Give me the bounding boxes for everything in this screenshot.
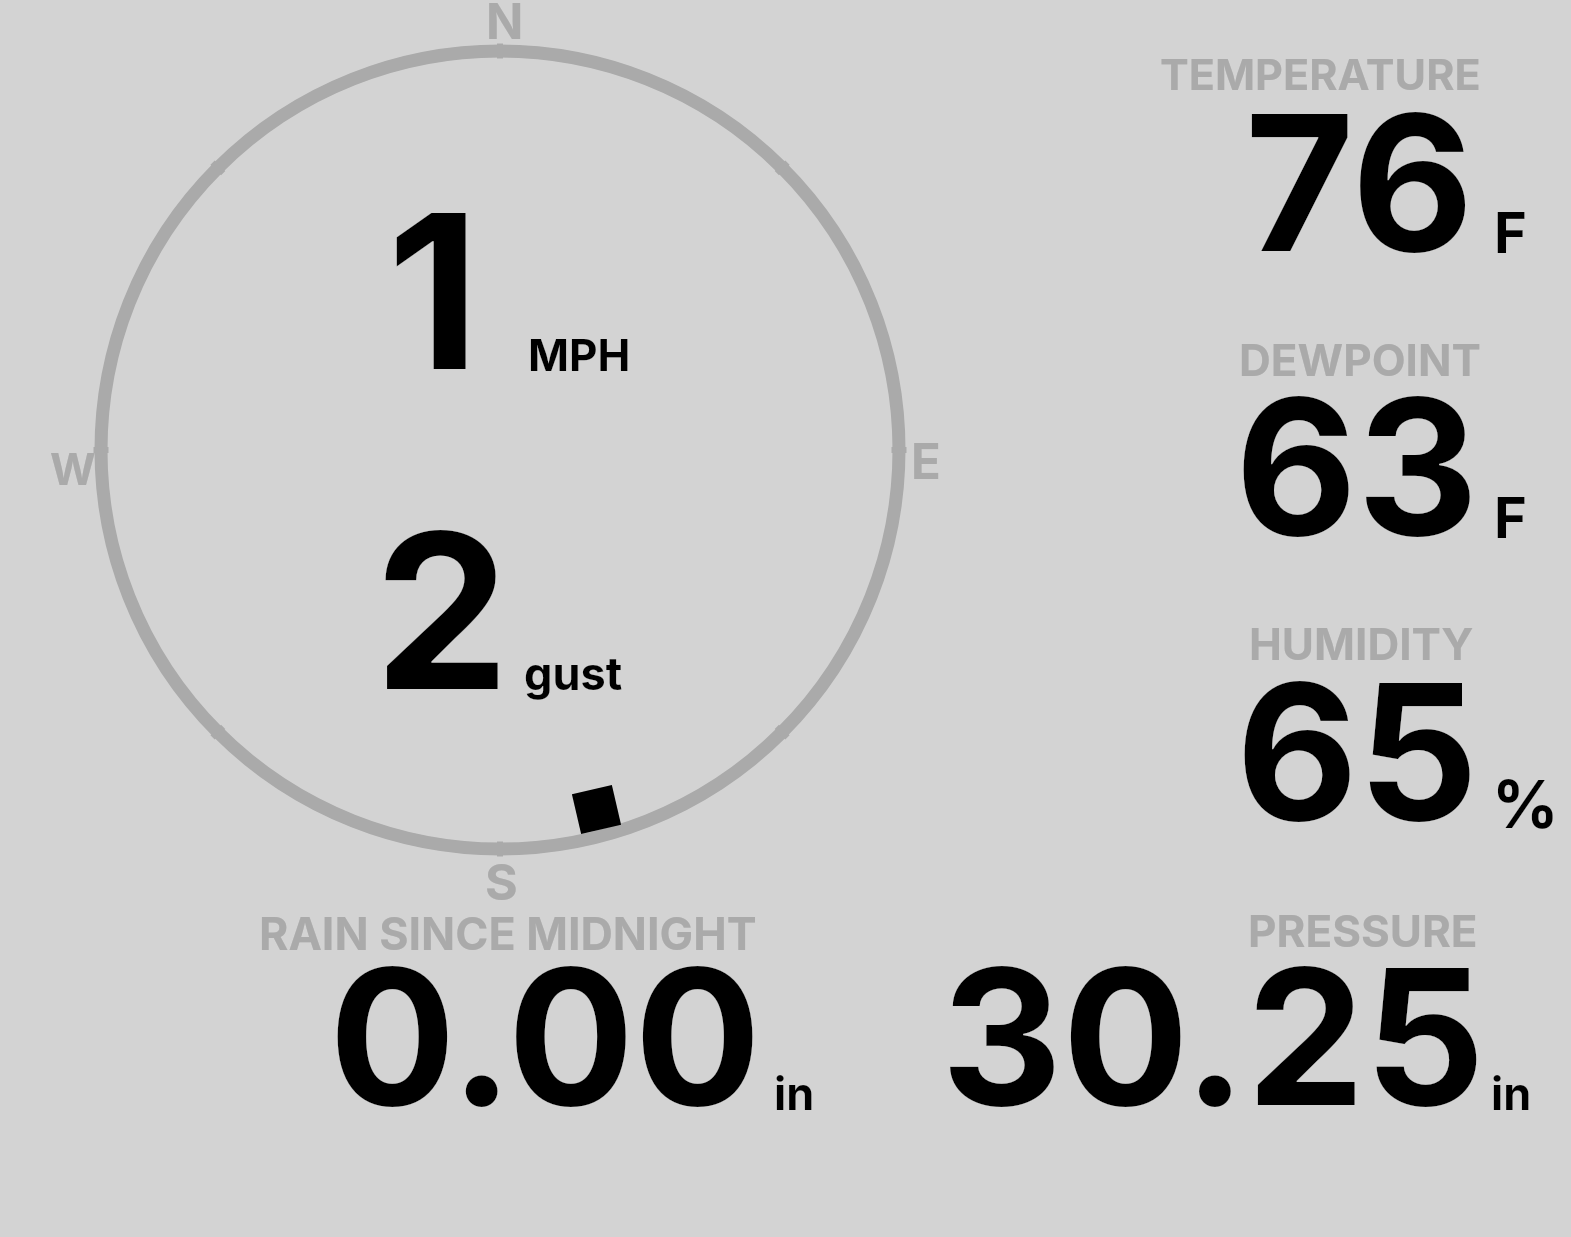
staticText: F bbox=[1494, 199, 1527, 267]
staticText: in bbox=[774, 1066, 815, 1120]
button[interactable]: Dew point 63 degrees Fahrenheit bbox=[1100, 325, 1571, 565]
staticText: F bbox=[1494, 484, 1527, 552]
staticText: TEMPERATURE bbox=[1160, 48, 1481, 100]
staticText: MPH bbox=[528, 328, 631, 381]
staticText: E bbox=[911, 432, 941, 491]
staticText: 0.00 bbox=[329, 923, 762, 1150]
staticText: % bbox=[1492, 764, 1559, 843]
staticText: HUMIDITY bbox=[1249, 617, 1474, 670]
staticText: 1 bbox=[387, 161, 480, 421]
staticText: 2 bbox=[374, 481, 510, 741]
staticText: N bbox=[486, 0, 524, 51]
staticText: 63 bbox=[1235, 353, 1479, 580]
staticText: DEWPOINT bbox=[1239, 333, 1481, 386]
button[interactable]: Temperature 76 degrees Fahrenheit bbox=[1100, 40, 1571, 280]
staticText: S bbox=[485, 852, 518, 912]
staticText: 65 bbox=[1236, 638, 1479, 865]
button[interactable]: Humidity 65 percent bbox=[1100, 610, 1571, 850]
button[interactable]: Pressure 30.25 inches bbox=[900, 895, 1560, 1130]
button[interactable]: Wind 1 miles per hour, gusting 2 bbox=[60, 10, 940, 890]
staticText: 30.25 bbox=[941, 923, 1485, 1150]
staticText: RAIN SINCE MIDNIGHT bbox=[259, 907, 757, 961]
staticText: 76 bbox=[1245, 69, 1474, 296]
staticText: W bbox=[50, 442, 96, 495]
button[interactable]: Rain since midnight 0.00 inches bbox=[220, 895, 860, 1130]
staticText: PRESSURE bbox=[1248, 904, 1478, 957]
staticText: gust bbox=[524, 646, 623, 700]
staticText: in bbox=[1491, 1066, 1532, 1120]
